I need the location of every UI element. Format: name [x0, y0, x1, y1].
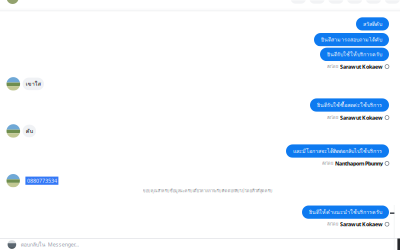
staticText: Sarawut Kokaew [340, 63, 383, 70]
button[interactable]: และมีโอกาสจะได้ติดต่อกลับไปใช้บริการ [6, 144, 389, 158]
button[interactable]: คับ [6, 124, 389, 138]
staticText: ส่งโดย [327, 63, 338, 70]
staticText: ยินดีสามารถสอบถามได้คับ [321, 36, 382, 44]
staticText: Sarawut Kokaew [340, 114, 383, 121]
staticText: ยินดีรับใช้ซื้อสดค่ะใช้บริการ [317, 101, 382, 109]
staticText: ส่งโดย [327, 221, 338, 227]
staticText: 0880773534 [27, 177, 57, 184]
staticText: Nanthaporn Pbunny [335, 160, 383, 167]
staticText: และมีโอกาสจะได้ติดต่อกลับไปใช้บริการ [293, 147, 382, 155]
button[interactable]: เขาใส [6, 77, 389, 91]
button[interactable]: ยินดีรับใช้ให้บริการครับ [6, 48, 389, 61]
staticText: ตอบกลับใน Messenger… [21, 240, 79, 249]
button[interactable]: ยินดีรับใช้ซื้อสดค่ะใช้บริการ [6, 98, 389, 112]
staticText: ยินดีให้คำแนะนำใช้บริการครับ [309, 208, 382, 216]
button[interactable]: สวัสดีคับ [6, 17, 389, 31]
staticText: สวัสดีคับ [363, 20, 382, 28]
staticText: เขาใส [26, 80, 41, 88]
staticText: Sarawut Kokaew [340, 221, 383, 228]
staticText: ส่งโดย [322, 160, 333, 166]
button[interactable]: ตอบกลับใน Messenger… [0, 239, 400, 250]
staticText: ยินดีรับใช้ให้บริการครับ [327, 50, 382, 59]
staticText: ขอบคุณสำหรับข้อมูลนะครับเดี๋ยวทางเราจะรี… [143, 188, 273, 194]
staticText: คับ [26, 127, 33, 135]
staticText: ส่งโดย [327, 114, 338, 121]
button[interactable]: ยินดีให้คำแนะนำใช้บริการครับ [6, 205, 389, 219]
button[interactable]: ยินดีสามารถสอบถามได้คับ [6, 33, 389, 46]
